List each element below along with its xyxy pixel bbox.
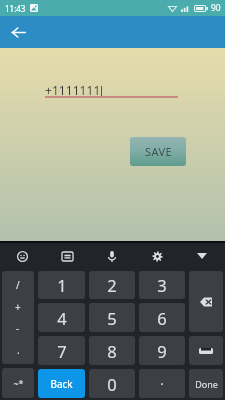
button[interactable]: Backspace bbox=[189, 271, 223, 332]
button[interactable]: Settings bbox=[144, 243, 170, 269]
staticText: + bbox=[15, 300, 21, 314]
button[interactable]: Back bbox=[5, 19, 31, 45]
button[interactable]: 5 bbox=[89, 303, 135, 332]
button[interactable]: 6 bbox=[139, 303, 185, 332]
staticText: 2 bbox=[107, 274, 117, 296]
button[interactable]: Back bbox=[38, 369, 85, 398]
staticText: 11:43 bbox=[5, 3, 26, 14]
button[interactable]: +1111111 bbox=[45, 81, 178, 98]
staticText: 1 bbox=[57, 274, 67, 296]
button[interactable]: ~* bbox=[2, 368, 34, 398]
staticText: Done bbox=[195, 378, 218, 390]
staticText: 90 bbox=[211, 2, 221, 14]
button[interactable]: Emoji bbox=[9, 243, 35, 269]
staticText: 9 bbox=[157, 340, 167, 362]
staticText: / bbox=[16, 278, 20, 292]
button[interactable]: Done bbox=[189, 369, 223, 398]
button[interactable]: Voice input bbox=[99, 243, 125, 269]
button[interactable]: 3 bbox=[139, 271, 185, 299]
staticText: 6 bbox=[157, 307, 167, 329]
button[interactable]: Symbols bbox=[2, 271, 34, 364]
button[interactable]: 9 bbox=[139, 336, 185, 365]
button[interactable]: 1 bbox=[38, 271, 85, 299]
staticText: 7 bbox=[57, 340, 67, 362]
staticText: 4 bbox=[57, 307, 67, 329]
staticText: ~* bbox=[13, 377, 24, 389]
button[interactable]: 8 bbox=[89, 336, 135, 365]
button[interactable]: 4 bbox=[38, 303, 85, 332]
button[interactable]: 2 bbox=[89, 271, 135, 299]
staticText: . bbox=[17, 343, 20, 357]
staticText: · bbox=[160, 375, 164, 393]
staticText: 0 bbox=[107, 373, 117, 395]
staticText: Back bbox=[50, 377, 73, 391]
staticText: +1111111 bbox=[45, 82, 101, 98]
button[interactable]: 7 bbox=[38, 336, 85, 365]
button[interactable]: · bbox=[139, 369, 185, 398]
staticText: SAVE bbox=[145, 144, 172, 159]
button[interactable]: Clipboard bbox=[54, 243, 80, 269]
staticText: - bbox=[16, 321, 20, 335]
button[interactable]: SAVE bbox=[130, 137, 186, 166]
staticText: 5 bbox=[107, 307, 117, 329]
button[interactable]: Space bbox=[189, 336, 223, 365]
staticText: 3 bbox=[157, 274, 167, 296]
staticText: 8 bbox=[107, 340, 117, 362]
button[interactable]: Hide keyboard bbox=[189, 243, 215, 269]
button[interactable]: 0 bbox=[89, 369, 135, 398]
